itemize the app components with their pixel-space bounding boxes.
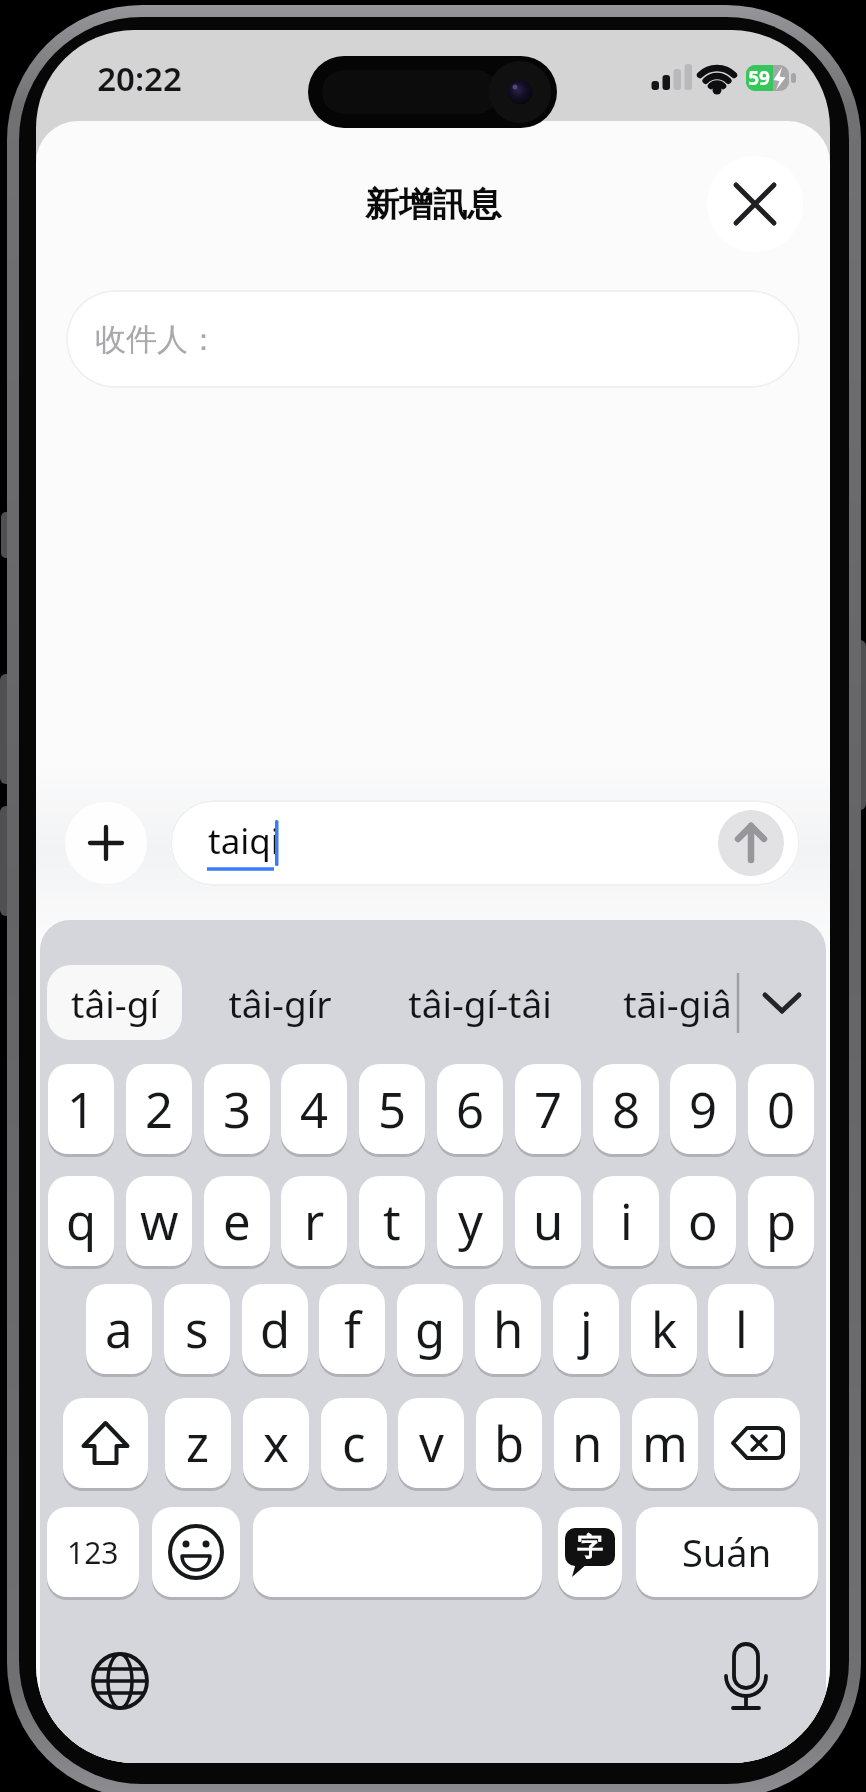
button[interactable]: x — [243, 1398, 309, 1488]
button[interactable]: 123 — [47, 1507, 139, 1597]
staticText: z — [186, 1410, 210, 1477]
staticText: tāi-giâ — [623, 978, 732, 1028]
button[interactable]: q — [48, 1176, 114, 1266]
staticText: 2 — [145, 1076, 174, 1143]
staticText: 59 — [748, 65, 770, 91]
button[interactable] — [718, 810, 784, 876]
staticText: 20:22 — [97, 56, 182, 96]
staticText: tâi-gí — [71, 978, 159, 1028]
staticText: p — [766, 1188, 797, 1255]
staticText: v — [419, 1410, 444, 1477]
button[interactable]: 1 — [48, 1064, 114, 1154]
staticText: 3 — [223, 1076, 252, 1143]
button[interactable]: a — [86, 1284, 152, 1374]
button[interactable] — [253, 1507, 542, 1597]
staticText: b — [494, 1410, 525, 1477]
staticText: 新增訊息 — [365, 183, 501, 226]
staticText: 7 — [534, 1076, 563, 1143]
staticText: c — [342, 1410, 366, 1477]
button[interactable] — [600, 965, 755, 1040]
button[interactable]: w — [126, 1176, 192, 1266]
staticText: r — [304, 1188, 325, 1255]
staticText: n — [572, 1410, 603, 1477]
button[interactable]: v — [398, 1398, 464, 1488]
button[interactable]: o — [670, 1176, 736, 1266]
staticText: a — [105, 1296, 133, 1363]
button[interactable]: k — [631, 1284, 697, 1374]
button[interactable]: 8 — [593, 1064, 659, 1154]
staticText: t — [383, 1188, 401, 1255]
button[interactable]: 9 — [670, 1064, 736, 1154]
button[interactable] — [707, 156, 803, 252]
staticText: w — [140, 1188, 179, 1255]
staticText: 8 — [612, 1076, 641, 1143]
staticText: u — [533, 1188, 564, 1255]
button[interactable]: c — [321, 1398, 387, 1488]
button[interactable]: n — [554, 1398, 620, 1488]
button[interactable]: u — [515, 1176, 581, 1266]
staticText: tâi-gí-tâi — [408, 978, 552, 1028]
button[interactable]: 5 — [359, 1064, 425, 1154]
staticText: g — [415, 1296, 446, 1363]
button[interactable]: Suán — [636, 1507, 818, 1597]
button[interactable]: p — [748, 1176, 814, 1266]
staticText: d — [260, 1296, 291, 1363]
button[interactable]: 4 — [281, 1064, 347, 1154]
staticText: x — [263, 1410, 289, 1477]
staticText: 收件人： — [95, 320, 219, 359]
button[interactable]: h — [475, 1284, 541, 1374]
staticText: 4 — [300, 1076, 329, 1143]
staticText: l — [735, 1296, 748, 1363]
staticText: s — [185, 1296, 209, 1363]
button[interactable]: f — [319, 1284, 385, 1374]
button[interactable] — [712, 1647, 780, 1715]
button[interactable]: d — [242, 1284, 308, 1374]
button[interactable]: e — [204, 1176, 270, 1266]
button[interactable]: 0 — [748, 1064, 814, 1154]
staticText: k — [651, 1296, 678, 1363]
button[interactable]: 字 — [558, 1507, 622, 1597]
button[interactable]: b — [476, 1398, 542, 1488]
staticText: h — [493, 1296, 524, 1363]
button[interactable]: g — [397, 1284, 463, 1374]
button[interactable]: j — [553, 1284, 619, 1374]
button[interactable]: y — [437, 1176, 503, 1266]
button[interactable]: l — [708, 1284, 774, 1374]
button[interactable]: 2 — [126, 1064, 192, 1154]
button[interactable] — [47, 965, 182, 1040]
staticText: taiqi — [208, 817, 280, 865]
staticText: f — [344, 1296, 361, 1363]
button[interactable] — [152, 1507, 240, 1597]
button[interactable]: i — [593, 1176, 659, 1266]
staticText: j — [580, 1296, 593, 1363]
button[interactable] — [200, 965, 360, 1040]
staticText: 123 — [67, 1532, 119, 1573]
button[interactable]: s — [164, 1284, 230, 1374]
staticText: 9 — [689, 1076, 718, 1143]
button[interactable]: taiqi — [170, 800, 800, 886]
button[interactable]: m — [632, 1398, 698, 1488]
button[interactable]: z — [165, 1398, 231, 1488]
staticText: o — [688, 1188, 718, 1255]
staticText: 0 — [767, 1076, 796, 1143]
button[interactable]: 7 — [515, 1064, 581, 1154]
button[interactable] — [380, 965, 580, 1040]
button[interactable]: r — [281, 1176, 347, 1266]
button[interactable]: 3 — [204, 1064, 270, 1154]
staticText: 5 — [378, 1076, 407, 1143]
button[interactable] — [63, 1398, 148, 1488]
staticText: y — [458, 1188, 483, 1255]
staticText: 字 — [577, 1531, 603, 1564]
staticText: e — [223, 1188, 251, 1255]
button[interactable]: 收件人： — [66, 290, 800, 388]
button[interactable] — [714, 1398, 800, 1488]
staticText: 1 — [67, 1076, 96, 1143]
staticText: 6 — [456, 1076, 485, 1143]
staticText: Suán — [682, 1526, 772, 1578]
button[interactable] — [65, 802, 147, 884]
staticText: i — [620, 1188, 633, 1255]
button[interactable]: t — [359, 1176, 425, 1266]
staticText: q — [66, 1188, 97, 1255]
button[interactable] — [86, 1647, 154, 1715]
button[interactable]: 6 — [437, 1064, 503, 1154]
